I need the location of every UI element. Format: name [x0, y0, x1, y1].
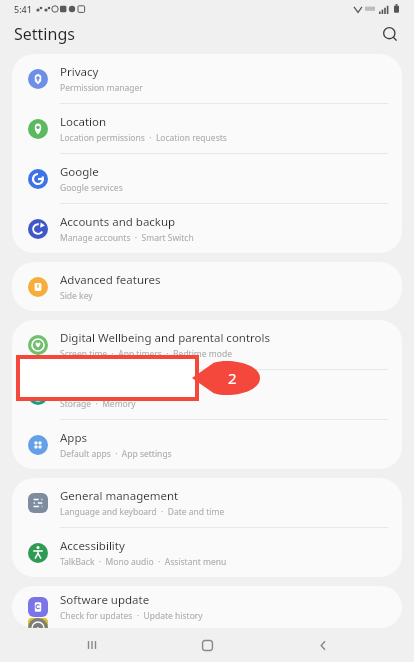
- button[interactable]: Apps: [12, 420, 402, 469]
- staticText: Privacy: [60, 64, 99, 80]
- staticText: Location: [60, 114, 107, 130]
- staticText: Accounts and backup: [60, 214, 176, 230]
- staticText: Manage accounts · Smart Switch: [60, 232, 194, 244]
- staticText: Accessibility: [60, 538, 125, 554]
- button[interactable]: Software update: [12, 586, 402, 628]
- staticText: Google: [60, 164, 99, 180]
- staticText: TalkBack · Mono audio · Assistant menu: [60, 556, 227, 568]
- staticText: Software update: [60, 592, 150, 608]
- button[interactable]: Back: [299, 628, 347, 662]
- staticText: Permission manager: [60, 82, 143, 94]
- button[interactable]: Accessibility: [12, 528, 402, 577]
- staticText: Check for updates · Update history: [60, 610, 203, 622]
- staticText: Google services: [60, 182, 123, 194]
- button[interactable]: Google: [12, 154, 402, 203]
- button[interactable]: General management: [12, 478, 402, 527]
- button[interactable]: Location: [12, 104, 402, 153]
- button[interactable]: Recent apps: [68, 628, 116, 662]
- staticText: Side key: [60, 290, 93, 302]
- button[interactable]: Search: [374, 18, 406, 50]
- staticText: 2: [228, 368, 237, 388]
- button[interactable]: Privacy: [12, 54, 402, 103]
- button[interactable]: Home: [183, 628, 231, 662]
- button[interactable]: Digital Wellbeing and parental controls: [12, 320, 402, 369]
- button[interactable]: Battery and device care: [12, 370, 402, 419]
- staticText: Screen time · App timers · Bedtime mode: [60, 348, 232, 360]
- button[interactable]: Advanced features: [12, 262, 402, 311]
- staticText: Default apps · App settings: [60, 448, 172, 460]
- staticText: Location permissions · Location requests: [60, 132, 227, 144]
- staticText: Language and keyboard · Date and time: [60, 506, 225, 518]
- staticText: Apps: [60, 430, 88, 446]
- staticText: Storage · Memory: [60, 398, 136, 410]
- staticText: Advanced features: [60, 272, 161, 288]
- staticText: 5:41: [14, 3, 32, 15]
- staticText: General management: [60, 488, 179, 504]
- staticText: Digital Wellbeing and parental controls: [60, 330, 271, 346]
- staticText: Settings: [14, 23, 75, 45]
- button[interactable]: Accounts and backup: [12, 204, 402, 253]
